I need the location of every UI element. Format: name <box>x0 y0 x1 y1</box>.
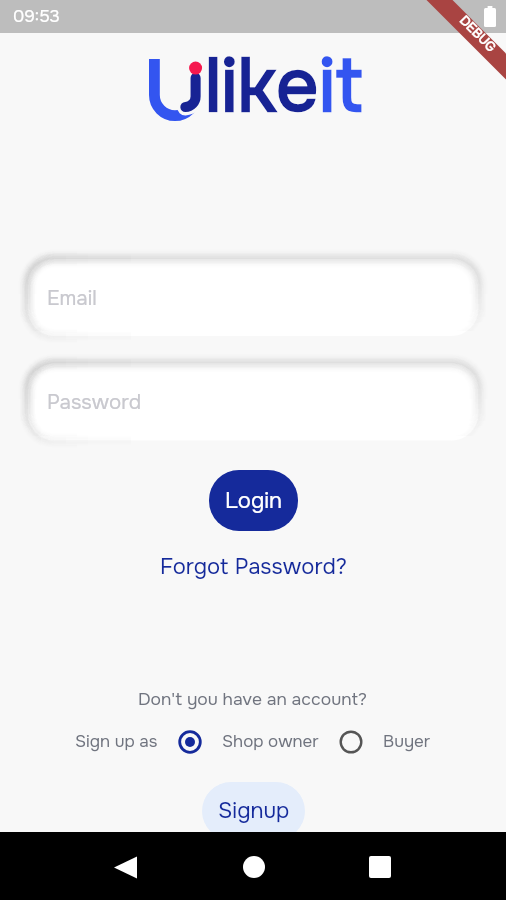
button[interactable]: Buyer <box>338 729 364 755</box>
staticText: it <box>319 39 363 133</box>
staticText: Signup <box>218 797 290 825</box>
button[interactable]: Forgot Password? <box>150 548 357 586</box>
button[interactable]: Shop owner <box>177 729 203 755</box>
button[interactable]: Recent apps <box>356 843 404 891</box>
button[interactable]: Buyer <box>383 731 431 753</box>
button[interactable]: Back <box>101 843 149 891</box>
staticText: 09:53 <box>13 6 60 28</box>
button[interactable]: Email <box>28 259 478 337</box>
button[interactable]: Shop owner <box>222 731 319 753</box>
button[interactable]: Home <box>230 843 278 891</box>
button[interactable]: Signup <box>202 782 305 840</box>
staticText: DEBUG <box>456 12 500 56</box>
staticText: Forgot Password? <box>160 553 347 581</box>
button[interactable]: Password <box>28 363 478 441</box>
staticText: Password <box>47 389 142 415</box>
button[interactable]: Login <box>209 470 298 531</box>
staticText: Sign up as <box>75 731 158 753</box>
staticText: like <box>205 39 319 133</box>
staticText: Don't you have an account? <box>138 688 368 710</box>
staticText: Login <box>225 487 283 515</box>
staticText: Email <box>47 285 97 311</box>
